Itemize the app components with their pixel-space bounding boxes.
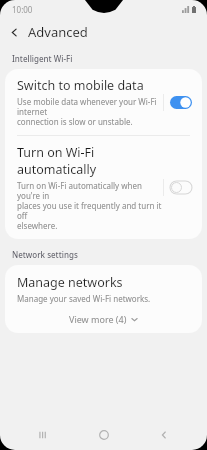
button[interactable]: Back bbox=[0, 18, 28, 46]
button[interactable]: Manage networks bbox=[5, 265, 202, 307]
button[interactable]: View more (4) bbox=[5, 307, 202, 333]
staticText: Advanced bbox=[28, 23, 88, 41]
staticText: Use mobile data whenever your Wi-Fi inte… bbox=[17, 96, 163, 127]
button[interactable]: Back bbox=[147, 420, 181, 450]
button[interactable]: Switch to mobile data bbox=[5, 69, 202, 135]
staticText: Intelligent Wi-Fi bbox=[12, 53, 73, 64]
staticText: Turn on Wi-Fi automatically bbox=[17, 144, 163, 178]
button[interactable]: Turn on Wi-Fi automatically bbox=[5, 136, 202, 239]
button[interactable]: Recents bbox=[26, 420, 60, 450]
staticText: View more (4) bbox=[69, 313, 127, 325]
staticText: Manage your saved Wi-Fi networks. bbox=[17, 293, 151, 304]
staticText: Turn on Wi-Fi automatically when you're … bbox=[17, 180, 163, 231]
staticText: Network settings bbox=[12, 249, 78, 260]
staticText: Manage networks bbox=[17, 274, 123, 291]
button[interactable]: On bbox=[170, 96, 192, 109]
staticText: 10:00 bbox=[12, 4, 33, 15]
button[interactable]: Home bbox=[87, 420, 121, 450]
button[interactable]: Off bbox=[170, 181, 192, 194]
staticText: Switch to mobile data bbox=[17, 77, 144, 94]
